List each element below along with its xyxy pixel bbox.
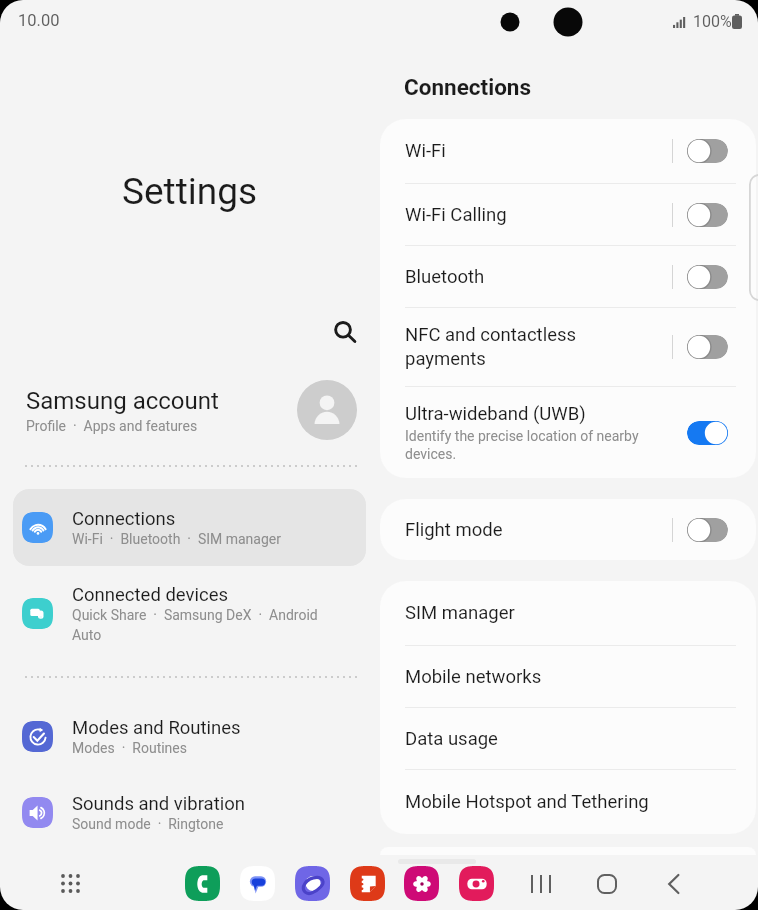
staticText: Data usage <box>405 728 498 750</box>
staticText: Samsung account <box>26 387 219 415</box>
button[interactable]: Sounds and vibration <box>13 774 366 851</box>
staticText: Connected devices <box>72 584 229 606</box>
staticText: Wi-Fi Calling <box>405 204 507 226</box>
button[interactable]: Connections <box>13 489 366 566</box>
staticText: Sounds and vibration <box>72 793 245 815</box>
staticText: Connections <box>404 74 532 100</box>
staticText: Modes · Routines <box>72 740 187 756</box>
button[interactable]: Toggle <box>687 518 728 542</box>
button[interactable]: Recents <box>521 864 561 904</box>
staticText: 100% <box>693 12 732 31</box>
button[interactable]: Samsung account <box>0 372 379 448</box>
staticText: Wi-Fi · Bluetooth · SIM manager <box>72 531 281 547</box>
button[interactable]: Wi-Fi <box>380 119 756 183</box>
button[interactable]: Camera <box>459 866 494 901</box>
button[interactable]: SIM manager <box>380 581 756 645</box>
staticText: Settings <box>122 170 258 213</box>
staticText: SIM manager <box>405 602 515 624</box>
button[interactable]: Phone <box>185 866 220 901</box>
staticText: Quick Share · Samsung DeX · Android Auto <box>72 607 326 643</box>
staticText: Ultra-wideband (UWB) <box>405 403 586 425</box>
button[interactable]: NFC and contactless payments <box>380 308 756 386</box>
button[interactable]: Internet <box>295 866 330 901</box>
button[interactable]: Modes and Routines <box>13 698 366 775</box>
button[interactable]: Flight mode <box>380 499 756 560</box>
button[interactable]: Toggle <box>687 335 728 359</box>
button[interactable]: Mobile networks <box>380 646 756 707</box>
button[interactable]: Apps <box>51 864 90 903</box>
staticText: Modes and Routines <box>72 717 241 739</box>
staticText: NFC and contactless payments <box>405 324 577 370</box>
button[interactable]: Back <box>654 864 694 904</box>
button[interactable]: Home <box>587 864 627 904</box>
button[interactable]: Bluetooth <box>380 246 756 307</box>
staticText: 10.00 <box>18 11 60 30</box>
staticText: Wi-Fi <box>405 140 446 162</box>
button[interactable]: Ultra-wideband (UWB) <box>380 387 756 478</box>
staticText: Mobile networks <box>405 666 542 688</box>
button[interactable]: Toggle <box>687 421 728 445</box>
button[interactable]: Toggle <box>687 265 728 289</box>
staticText: Identify the precise location of nearby … <box>405 428 639 463</box>
button[interactable]: Notes <box>350 866 385 901</box>
button[interactable]: Data usage <box>380 708 756 769</box>
staticText: Flight mode <box>405 519 503 541</box>
button[interactable]: Search <box>323 310 367 354</box>
staticText: Sound mode · Ringtone <box>72 816 224 832</box>
button[interactable]: Mobile Hotspot and Tethering <box>380 770 756 834</box>
staticText: Connections <box>72 508 176 530</box>
button[interactable]: Messages <box>240 866 275 901</box>
staticText: Mobile Hotspot and Tethering <box>405 791 649 813</box>
staticText: Profile · Apps and features <box>26 418 198 434</box>
staticText: Bluetooth <box>405 266 485 288</box>
button[interactable]: Toggle <box>687 139 728 163</box>
button[interactable]: Gallery <box>404 866 439 901</box>
button[interactable]: Toggle <box>687 203 728 227</box>
button[interactable]: Connected devices <box>13 568 366 658</box>
button[interactable]: Wi-Fi Calling <box>380 184 756 245</box>
